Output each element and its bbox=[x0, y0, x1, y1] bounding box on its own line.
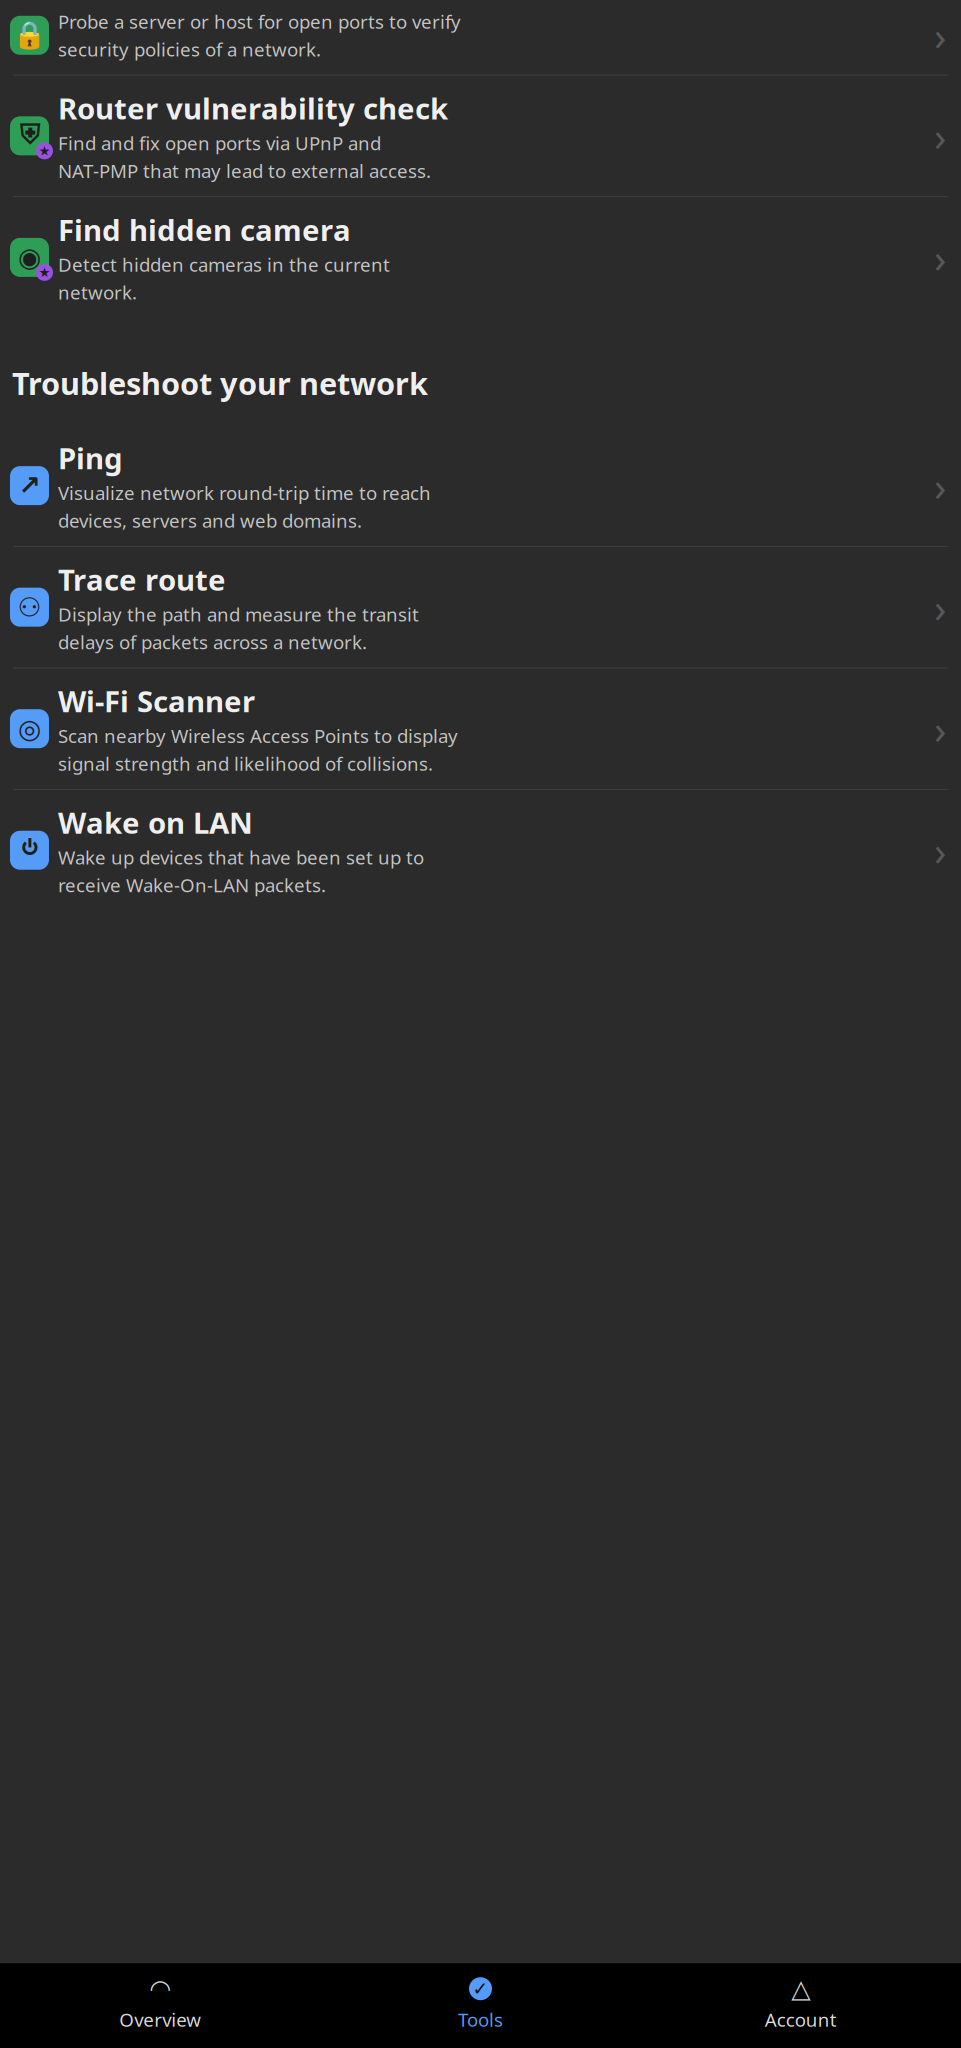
staticText: ★ bbox=[38, 143, 50, 158]
button[interactable]: △ bbox=[641, 1963, 961, 2048]
staticText: Wake up devices that have been set up to… bbox=[58, 845, 424, 897]
staticText: › bbox=[934, 9, 946, 62]
staticText: Wake on LAN bbox=[58, 803, 253, 842]
staticText: Visualize network round-trip time to rea… bbox=[58, 480, 431, 533]
button[interactable]: ⚇ bbox=[0, 547, 961, 667]
button[interactable]: ✓ bbox=[320, 1963, 641, 2048]
staticText: Trace route bbox=[58, 560, 226, 599]
staticText: Wi-Fi Scanner bbox=[58, 681, 255, 720]
staticText: Find and fix open ports via UPnP and NAT… bbox=[58, 130, 431, 183]
button[interactable]: ◉ bbox=[0, 197, 961, 318]
staticText: › bbox=[934, 231, 946, 284]
staticText: › bbox=[934, 581, 946, 634]
button[interactable]: ◠ bbox=[0, 1963, 320, 2048]
staticText: Router vulnerability check bbox=[58, 89, 448, 128]
button[interactable]: 🔒 bbox=[0, 0, 961, 75]
button[interactable]: ⛨ bbox=[0, 76, 961, 196]
staticText: ◎ bbox=[18, 714, 41, 744]
staticText: › bbox=[934, 702, 946, 755]
staticText: ★ bbox=[38, 265, 50, 280]
staticText: 🔒 bbox=[13, 20, 46, 51]
staticText: Overview bbox=[119, 2007, 201, 2032]
button[interactable]: ⏻ bbox=[0, 790, 961, 910]
staticText: ⚇ bbox=[17, 592, 41, 622]
staticText: ✓ bbox=[472, 1978, 488, 1999]
staticText: ⏻ bbox=[21, 834, 37, 867]
staticText: Account bbox=[765, 2007, 837, 2032]
staticText: ↗ bbox=[18, 470, 40, 501]
staticText: ⛨ bbox=[19, 123, 39, 149]
staticText: › bbox=[934, 459, 946, 512]
button[interactable]: ↗ bbox=[0, 425, 961, 546]
staticText: › bbox=[934, 824, 946, 877]
staticText: ◠ bbox=[149, 1974, 171, 2003]
staticText: ◉ bbox=[18, 242, 41, 272]
staticText: Probe a server or host for open ports to… bbox=[58, 9, 461, 62]
staticText: Display the path and measure the transit… bbox=[58, 602, 419, 654]
staticText: Detect hidden cameras in the current net… bbox=[58, 252, 390, 305]
staticText: Tools bbox=[458, 2007, 503, 2032]
staticText: › bbox=[934, 109, 946, 162]
button[interactable]: ◎ bbox=[0, 668, 961, 789]
staticText: Find hidden camera bbox=[58, 210, 351, 249]
staticText: △ bbox=[791, 1974, 810, 2003]
staticText: Troubleshoot your network bbox=[12, 363, 428, 403]
staticText: Scan nearby Wireless Access Points to di… bbox=[58, 723, 458, 776]
staticText: Ping bbox=[58, 438, 123, 477]
